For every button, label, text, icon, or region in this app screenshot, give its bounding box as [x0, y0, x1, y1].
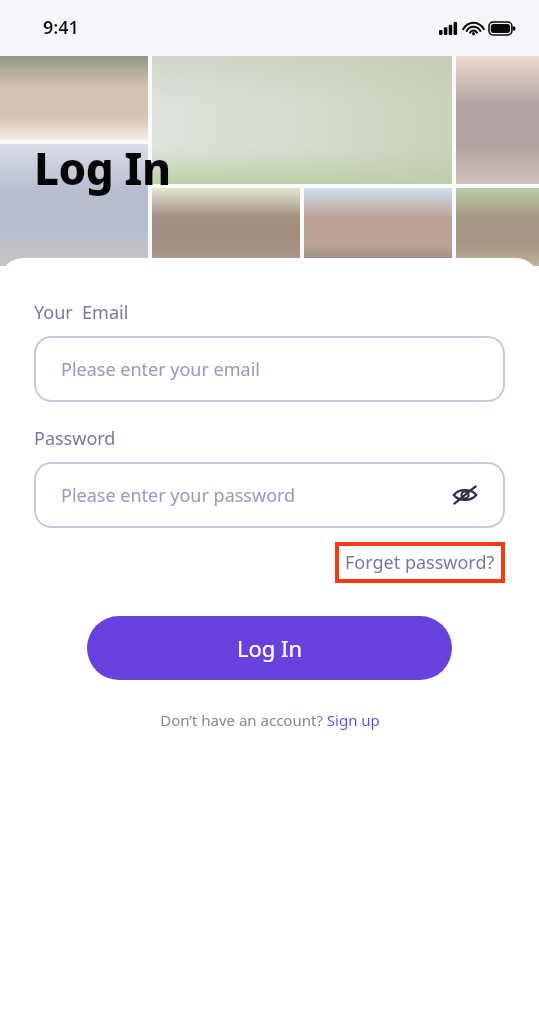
- staticText: Don’t have an account? Sign up: [160, 710, 380, 730]
- button[interactable]: Please enter your email: [34, 336, 505, 402]
- button[interactable]: Don’t have an account? Sign up: [154, 707, 386, 733]
- staticText: Please enter your email: [61, 357, 260, 382]
- staticText: Log In: [34, 138, 171, 198]
- staticText: Your Email: [34, 300, 129, 325]
- button[interactable]: Please enter your password: [34, 462, 505, 528]
- staticText: Forget password?: [345, 550, 495, 575]
- button[interactable]: Show password: [447, 477, 483, 513]
- staticText: Log In: [237, 633, 303, 663]
- staticText: Please enter your password: [61, 483, 296, 508]
- staticText: Password: [34, 426, 116, 451]
- button[interactable]: Forget password?: [335, 542, 505, 583]
- button[interactable]: Log In: [87, 616, 452, 680]
- staticText: 9:41: [43, 15, 79, 40]
